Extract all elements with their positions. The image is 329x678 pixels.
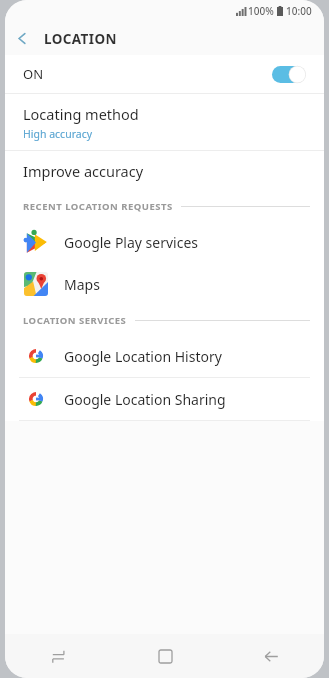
staticText: Google Location History: [64, 347, 222, 366]
staticText: Maps: [64, 275, 100, 294]
button[interactable]: Google Location History: [5, 335, 324, 377]
button[interactable]: Home: [112, 634, 218, 678]
staticText: LOCATION: [44, 30, 117, 48]
button[interactable]: Google Location Sharing: [5, 378, 324, 420]
button[interactable]: Maps: [5, 263, 324, 305]
staticText: ON: [23, 65, 44, 83]
staticText: 10:00: [286, 4, 312, 18]
button[interactable]: ON: [5, 55, 324, 93]
staticText: Google Location Sharing: [64, 390, 226, 409]
staticText: LOCATION SERVICES: [23, 314, 127, 327]
button[interactable]: Google Play services: [5, 221, 324, 263]
staticText: RECENT LOCATION REQUESTS: [23, 200, 173, 213]
button[interactable]: Back: [218, 634, 324, 678]
button[interactable]: Back: [5, 22, 39, 55]
button[interactable]: Recents: [5, 634, 112, 678]
staticText: 100%: [248, 4, 274, 18]
staticText: High accuracy: [23, 127, 93, 141]
staticText: Google Play services: [64, 233, 199, 252]
button[interactable]: Improve accuracy: [5, 151, 324, 191]
button[interactable]: Locating method: [5, 94, 324, 150]
staticText: Improve accuracy: [23, 161, 144, 181]
staticText: Locating method: [23, 104, 139, 124]
